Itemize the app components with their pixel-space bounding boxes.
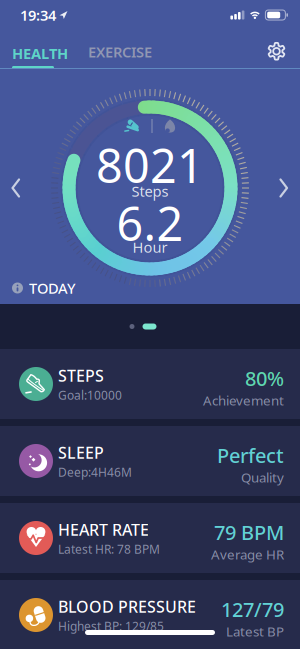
staticText: EXERCISE (88, 42, 152, 61)
staticText: 127/79 (221, 596, 284, 622)
staticText: 80% (245, 365, 284, 391)
button[interactable]: BLOOD PRESSURE (0, 580, 300, 649)
button[interactable]: Previous (11, 178, 20, 197)
staticText: Hour (132, 237, 167, 257)
button[interactable]: EXERCISE (88, 42, 152, 66)
staticText: BLOOD PRESSURE (58, 596, 196, 617)
button[interactable]: STEPS (0, 349, 300, 419)
staticText: 8021 (96, 134, 204, 196)
staticText: Average HR (211, 545, 284, 563)
button[interactable]: SLEEP (0, 426, 300, 496)
button[interactable]: Today info (12, 278, 76, 298)
staticText: Quality (241, 468, 284, 486)
button[interactable]: Next (279, 178, 288, 197)
staticText: Latest HR: 78 BPM (58, 541, 160, 557)
staticText: 79 BPM (214, 519, 284, 545)
staticText: Deep:4H46M (58, 464, 132, 480)
staticText: Steps (131, 181, 168, 201)
staticText: Highest BP: 129/85 (58, 618, 164, 634)
staticText: Achievement (203, 391, 284, 409)
staticText: Latest BP (226, 622, 284, 640)
staticText: HEART RATE (58, 519, 149, 540)
button[interactable]: Settings (267, 42, 286, 61)
staticText: SLEEP (58, 442, 104, 463)
staticText: 19:34 (20, 5, 56, 25)
staticText: Perfect (217, 442, 284, 468)
staticText: STEPS (58, 365, 104, 386)
button[interactable]: HEART RATE (0, 503, 300, 573)
staticText: Goal:10000 (58, 387, 122, 403)
staticText: HEALTH (12, 43, 68, 63)
staticText: TODAY (29, 278, 76, 298)
button[interactable]: HEALTH (12, 43, 68, 69)
staticText: 6.2 (116, 192, 183, 254)
